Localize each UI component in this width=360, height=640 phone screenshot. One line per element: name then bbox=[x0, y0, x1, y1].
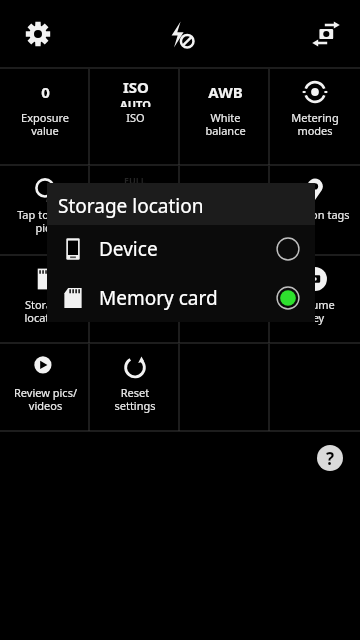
button[interactable]: Help bbox=[310, 438, 350, 478]
button[interactable]: Location tags bbox=[270, 166, 360, 255]
staticText: White balance bbox=[205, 110, 246, 138]
staticText: ? bbox=[326, 447, 335, 470]
staticText: FULL bbox=[124, 174, 146, 186]
staticText: volume key bbox=[296, 297, 335, 325]
staticText: ISO bbox=[126, 110, 145, 125]
staticText: Memory card bbox=[99, 285, 218, 311]
button[interactable]: Recording mode bbox=[180, 166, 270, 255]
button[interactable]: AWB bbox=[180, 69, 270, 165]
staticText: Review pics/ videos bbox=[14, 385, 77, 413]
button[interactable]: Switch camera bbox=[304, 12, 348, 56]
staticText: Exposure value bbox=[21, 110, 69, 138]
button[interactable]: Storage location bbox=[0, 256, 90, 343]
staticText: Storage location bbox=[58, 193, 204, 219]
staticText: Reset settings bbox=[114, 385, 156, 413]
button[interactable]: Memory card bbox=[47, 273, 315, 322]
staticText: Voice control bbox=[192, 297, 259, 312]
button[interactable]: Metering modes bbox=[270, 69, 360, 165]
button[interactable]: volume key bbox=[270, 256, 360, 343]
button[interactable]: Device bbox=[47, 225, 315, 273]
staticText: Storage location bbox=[24, 297, 66, 325]
button[interactable]: 0 bbox=[0, 69, 90, 165]
staticText: AWB bbox=[208, 82, 243, 102]
staticText: 0 bbox=[41, 82, 50, 102]
staticText: Location tags bbox=[280, 207, 350, 222]
button[interactable]: Flash off bbox=[158, 12, 202, 56]
button[interactable]: Settings bbox=[16, 12, 60, 56]
staticText: Grid lines bbox=[111, 297, 160, 312]
staticText: Recording mode bbox=[199, 207, 252, 235]
button[interactable]: Voice control bbox=[180, 256, 270, 343]
staticText: Device bbox=[99, 236, 158, 262]
staticText: ISO bbox=[123, 77, 149, 97]
button[interactable]: FULL bbox=[90, 166, 180, 255]
staticText: Video size bbox=[109, 207, 161, 222]
button[interactable]: ISO bbox=[90, 69, 180, 165]
button[interactable]: Tap to take pics bbox=[0, 166, 90, 255]
button[interactable]: Reset settings bbox=[90, 344, 180, 431]
button[interactable]: Grid lines bbox=[90, 256, 180, 343]
button[interactable]: Review pics/ videos bbox=[0, 344, 90, 431]
staticText: Metering modes bbox=[291, 110, 339, 138]
staticText: HD bbox=[125, 186, 145, 204]
staticText: AUTO bbox=[120, 97, 151, 107]
staticText: Tap to take pics bbox=[17, 207, 74, 235]
